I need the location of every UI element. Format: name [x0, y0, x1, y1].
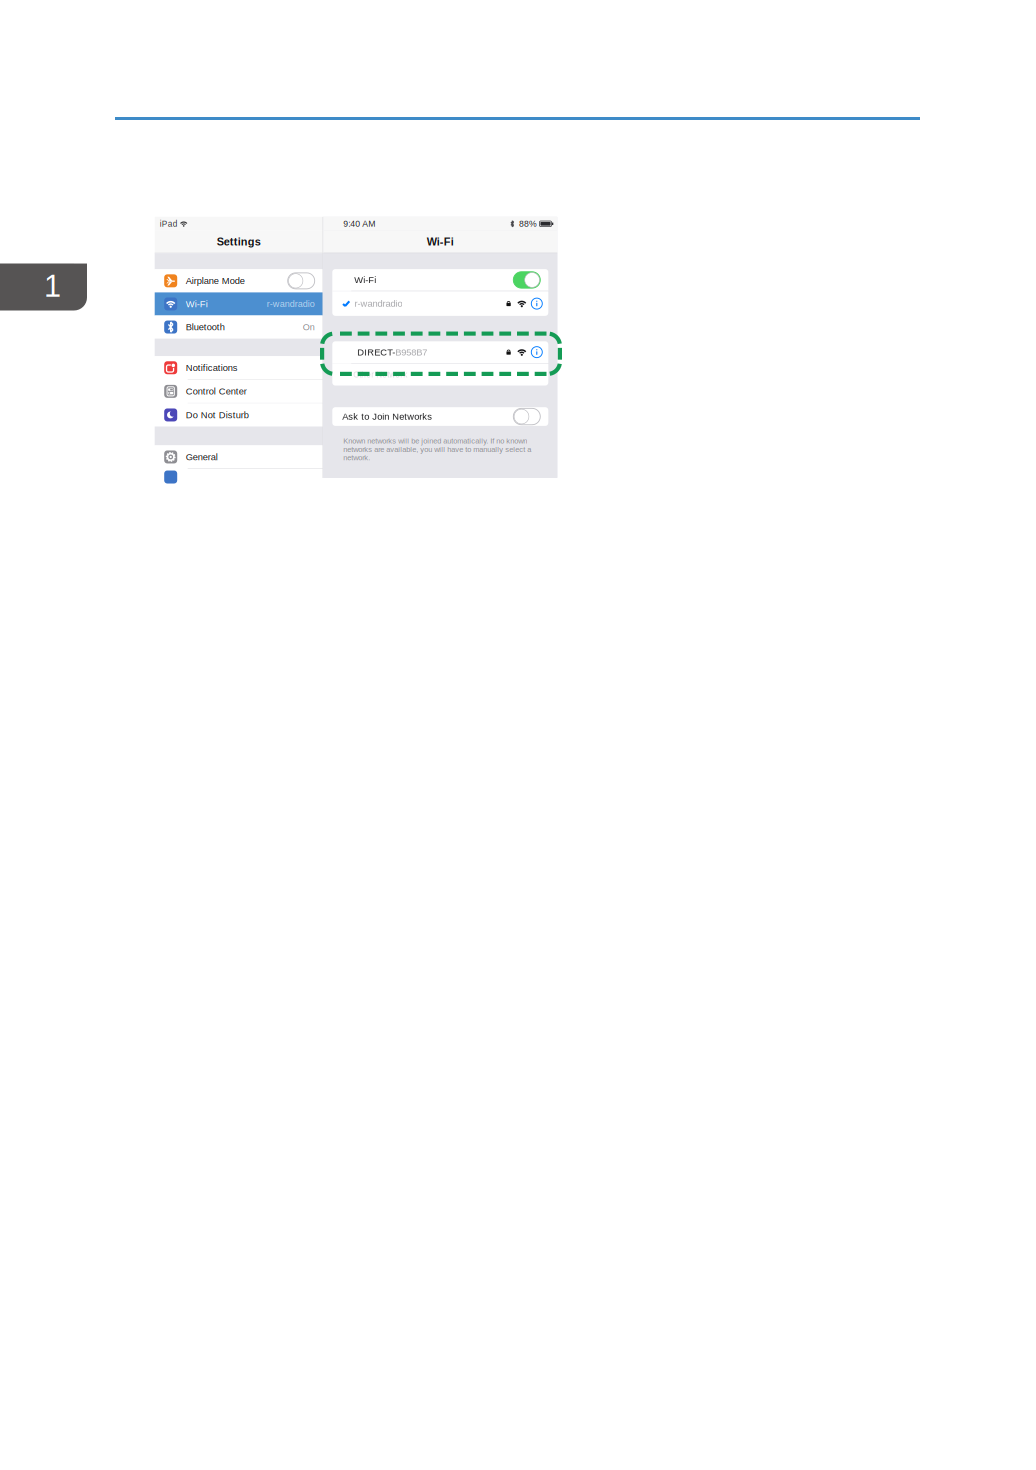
- staticText: Control Center: [186, 386, 247, 396]
- button[interactable]: Control Center: [155, 380, 323, 403]
- staticText: Wi-Fi: [427, 236, 454, 248]
- button[interactable]: Notifications: [155, 356, 323, 379]
- staticText: Ask to Join Networks: [342, 411, 432, 422]
- button[interactable]: Bluetooth: [155, 315, 323, 339]
- button[interactable]: Wi-Fi: [332, 269, 548, 291]
- staticText: B958B7: [395, 347, 427, 357]
- staticText: 88%: [519, 219, 537, 229]
- staticText: 9:40 AM: [343, 219, 375, 229]
- button[interactable]: Ask to Join Networks: [332, 407, 548, 426]
- button[interactable]: Do Not Disturb: [155, 403, 323, 426]
- staticText: 1: [44, 269, 61, 303]
- staticText: Wi-Fi: [186, 299, 208, 309]
- staticText: DIRECT-: [357, 347, 395, 357]
- staticText: r-wandradio: [354, 298, 402, 309]
- button[interactable]: r-wandradio: [332, 291, 548, 316]
- button[interactable]: Airplane Mode: [155, 269, 323, 292]
- staticText: Airplane Mode: [186, 276, 245, 286]
- button[interactable]: DIRECT-: [332, 341, 548, 363]
- staticText: Known networks will be joined automatica…: [343, 437, 531, 462]
- staticText: Settings: [217, 236, 261, 248]
- staticText: On: [303, 322, 315, 332]
- staticText: Notifications: [186, 362, 238, 373]
- button[interactable]: Wi-Fi: [155, 292, 323, 315]
- staticText: r-wandradio: [267, 299, 315, 309]
- staticText: General: [186, 452, 218, 462]
- button[interactable]: General: [155, 445, 323, 468]
- staticText: Do Not Disturb: [186, 410, 249, 420]
- staticText: Bluetooth: [186, 322, 225, 332]
- staticText: Other Network: [353, 370, 407, 379]
- staticText: iPad: [160, 219, 178, 228]
- staticText: Wi-Fi: [354, 275, 376, 285]
